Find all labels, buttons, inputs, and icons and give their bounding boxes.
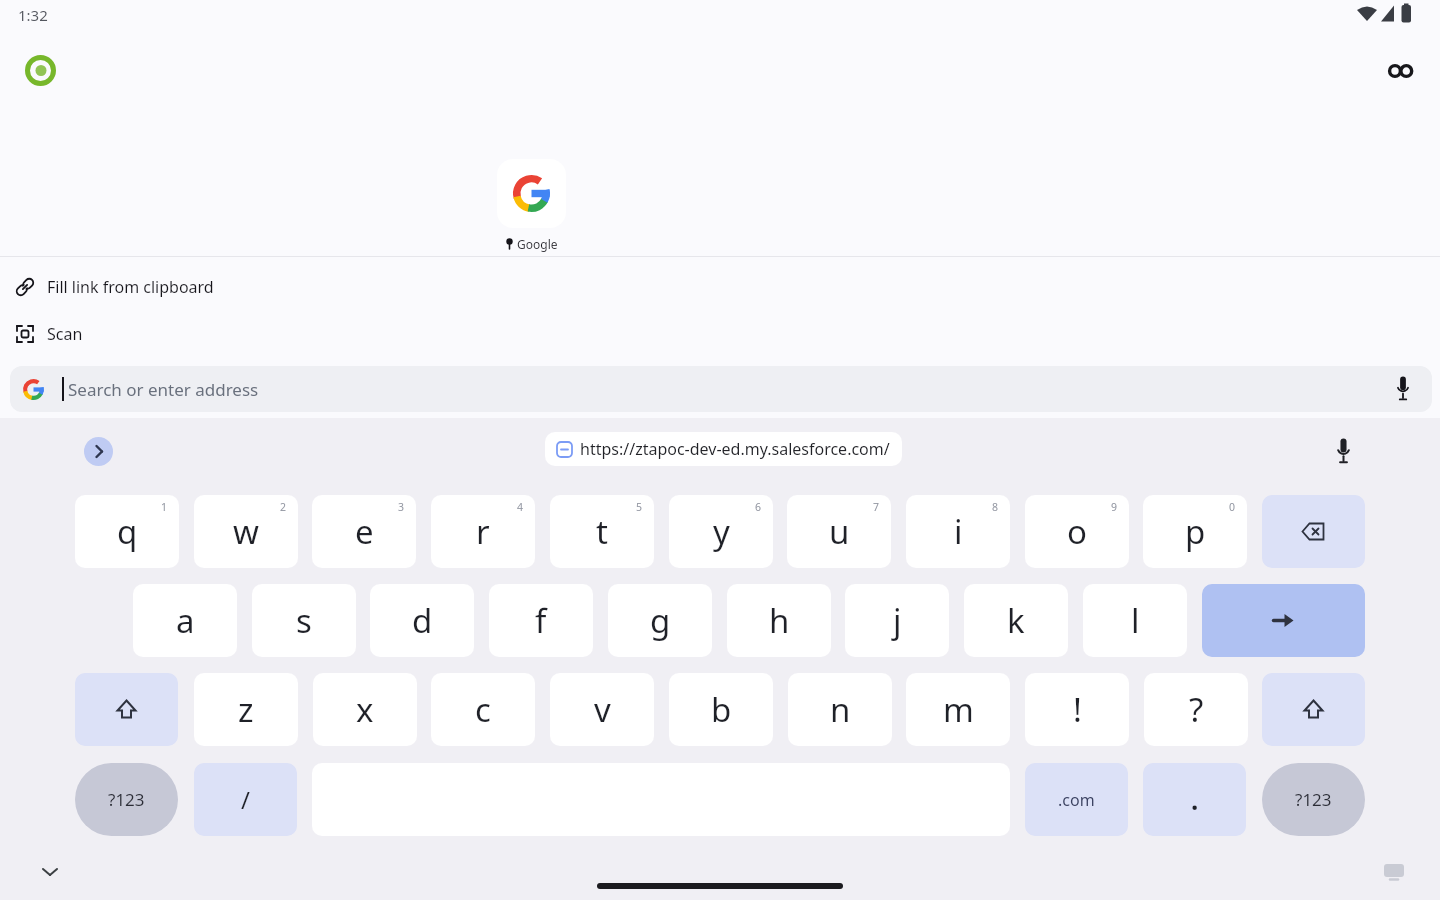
button[interactable]: Search or enter address <box>10 366 1432 412</box>
staticText: o <box>1067 509 1087 554</box>
staticText: 0 <box>1229 500 1236 514</box>
staticText: .com <box>1058 789 1095 811</box>
button[interactable]: . <box>1143 763 1246 836</box>
staticText: q <box>117 509 138 554</box>
staticText: 6 <box>755 500 762 514</box>
staticText: Google <box>517 236 558 252</box>
staticText: u <box>829 509 850 554</box>
staticText: i <box>954 509 963 554</box>
button[interactable]: ? <box>1144 673 1248 746</box>
button[interactable]: ! <box>1025 673 1129 746</box>
button[interactable] <box>1262 495 1365 568</box>
button[interactable]: x <box>313 673 417 746</box>
staticText: 2 <box>280 500 287 514</box>
button[interactable]: l <box>1083 584 1187 657</box>
staticText: ?123 <box>1295 788 1332 811</box>
staticText: Scan <box>47 323 83 345</box>
button[interactable]: z <box>194 673 298 746</box>
staticText: 1:32 <box>18 5 48 25</box>
button[interactable]: g <box>608 584 712 657</box>
button[interactable]: u <box>787 495 891 568</box>
staticText: https://ztapoc-dev-ed.my.salesforce.com/ <box>580 438 890 460</box>
staticText: z <box>238 687 254 732</box>
button[interactable]: n <box>788 673 892 746</box>
button[interactable]: q <box>75 495 179 568</box>
button[interactable]: i <box>906 495 1010 568</box>
staticText: x <box>356 687 374 732</box>
button[interactable] <box>84 437 113 466</box>
button[interactable]: p <box>1143 495 1247 568</box>
button[interactable]: ?123 <box>1262 763 1365 836</box>
staticText: g <box>650 598 671 643</box>
button[interactable]: https://ztapoc-dev-ed.my.salesforce.com/ <box>545 432 902 466</box>
staticText: 8 <box>992 500 999 514</box>
button[interactable] <box>1262 673 1365 746</box>
button[interactable]: h <box>727 584 831 657</box>
button[interactable]: / <box>194 763 297 836</box>
staticText: 7 <box>873 500 880 514</box>
button[interactable]: m <box>906 673 1010 746</box>
button[interactable]: ?123 <box>75 763 178 836</box>
staticText: b <box>711 687 732 732</box>
staticText: w <box>233 509 259 554</box>
button[interactable]: s <box>252 584 356 657</box>
staticText: ! <box>1073 687 1082 732</box>
button[interactable]: o <box>1025 495 1129 568</box>
button[interactable]: .com <box>1025 763 1128 836</box>
button[interactable]: f <box>489 584 593 657</box>
staticText: d <box>412 598 433 643</box>
staticText: k <box>1007 598 1025 643</box>
staticText: 3 <box>398 500 405 514</box>
staticText: a <box>176 598 195 643</box>
button[interactable] <box>497 159 566 228</box>
staticText: m <box>943 687 974 732</box>
button[interactable]: j <box>845 584 949 657</box>
staticText: p <box>1185 509 1206 554</box>
staticText: . <box>1191 782 1199 817</box>
button[interactable]: v <box>550 673 654 746</box>
staticText: c <box>475 687 491 732</box>
staticText: ? <box>1189 687 1204 732</box>
button[interactable]: t <box>550 495 654 568</box>
staticText: v <box>594 687 611 732</box>
button[interactable]: a <box>133 584 237 657</box>
button[interactable]: Fill link from clipboard <box>0 266 720 307</box>
staticText: 1 <box>161 500 168 514</box>
staticText: j <box>893 598 902 643</box>
button[interactable]: w <box>194 495 298 568</box>
staticText: r <box>476 509 490 554</box>
staticText: t <box>596 509 608 554</box>
staticText: 4 <box>517 500 524 514</box>
staticText: h <box>769 598 790 643</box>
staticText: ?123 <box>108 788 145 811</box>
staticText: f <box>535 598 547 643</box>
button[interactable]: k <box>964 584 1068 657</box>
staticText: Fill link from clipboard <box>47 276 214 298</box>
button[interactable]: e <box>312 495 416 568</box>
button[interactable]: r <box>431 495 535 568</box>
staticText: 9 <box>1111 500 1118 514</box>
button[interactable] <box>1202 584 1365 657</box>
staticText: l <box>1131 598 1140 643</box>
staticText: e <box>355 509 374 554</box>
staticText: n <box>830 687 851 732</box>
button[interactable]: Scan <box>0 313 720 354</box>
staticText: 5 <box>636 500 643 514</box>
staticText: s <box>296 598 312 643</box>
button[interactable]: d <box>370 584 474 657</box>
button[interactable]: b <box>669 673 773 746</box>
button[interactable]: c <box>431 673 535 746</box>
staticText: / <box>241 783 250 816</box>
staticText: Search or enter address <box>68 378 259 401</box>
button[interactable]: y <box>669 495 773 568</box>
staticText: y <box>713 509 730 554</box>
button[interactable] <box>75 673 178 746</box>
